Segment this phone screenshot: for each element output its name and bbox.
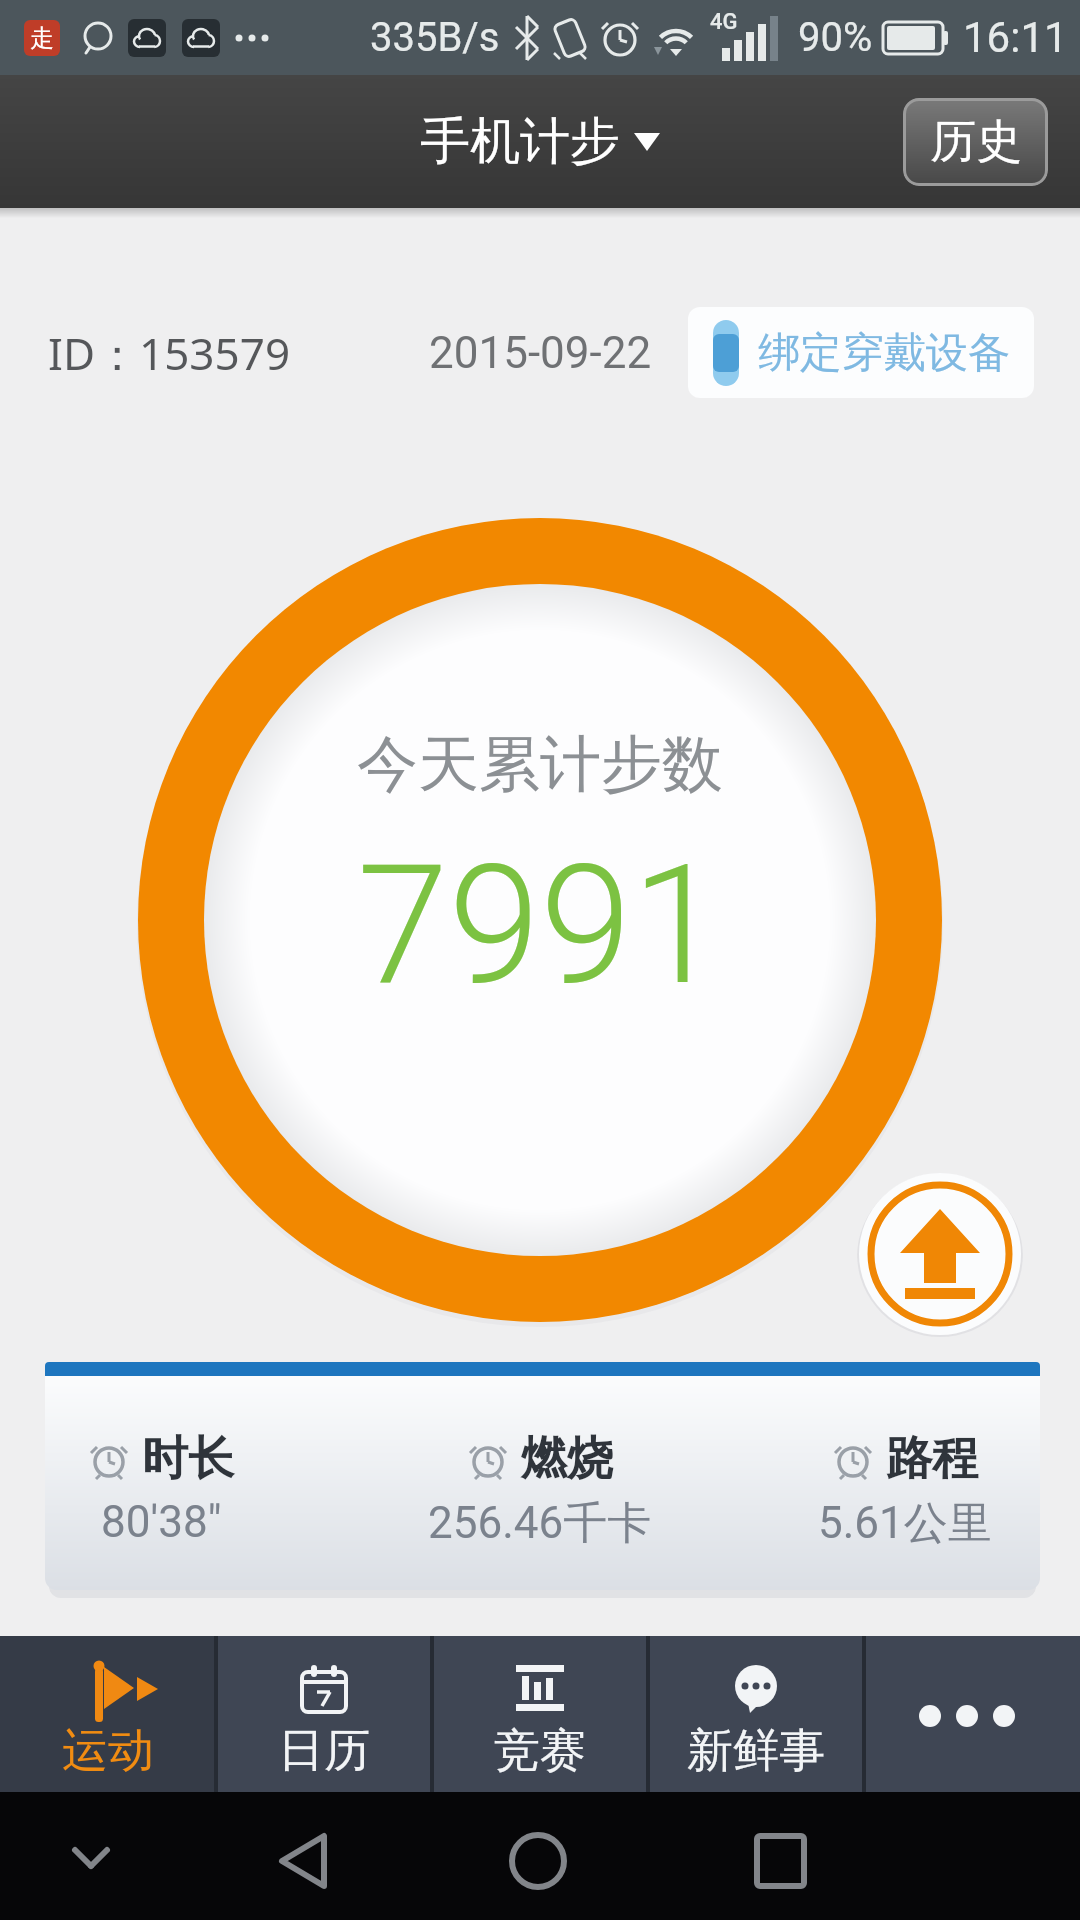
staticText: 今天累计步数 [357,726,723,803]
staticText: 7991 [357,829,724,1022]
staticText: 运动 [62,1722,154,1780]
staticText: 5.61公里 [818,1496,992,1551]
staticText: 4G [710,9,738,35]
staticText: 新鲜事 [687,1722,825,1780]
staticText: 手机计步 [420,110,620,173]
button[interactable]: 运动 [0,1636,216,1792]
button[interactable] [0,1792,360,1920]
staticText: 80'38" [101,1496,222,1548]
button[interactable]: 日历 [216,1636,432,1792]
staticText: 335B/s [370,14,500,61]
staticText: 竞赛 [494,1722,586,1780]
staticText: 256.46千卡 [428,1496,652,1551]
staticText: 2015-09-22 [429,327,652,379]
button[interactable] [360,1792,720,1920]
staticText: 燃烧 [521,1430,613,1488]
button[interactable]: 历史 [903,98,1048,186]
button[interactable] [857,1171,1023,1337]
button[interactable]: 绑定穿戴设备 [688,307,1034,398]
staticText: 90% [798,14,873,61]
button[interactable] [720,1792,1080,1920]
staticText: 时长 [142,1430,234,1488]
staticText: 历史 [930,113,1022,171]
staticText: 走 [30,23,54,53]
button[interactable]: 竞赛 [432,1636,648,1792]
staticText: 绑定穿戴设备 [758,327,1010,380]
staticText: 16:11 [963,13,1068,62]
button[interactable] [864,1636,1080,1792]
button[interactable]: 新鲜事 [648,1636,864,1792]
staticText: ID：153579 [48,323,291,383]
staticText: 路程 [886,1430,978,1488]
staticText: 日历 [278,1722,370,1780]
